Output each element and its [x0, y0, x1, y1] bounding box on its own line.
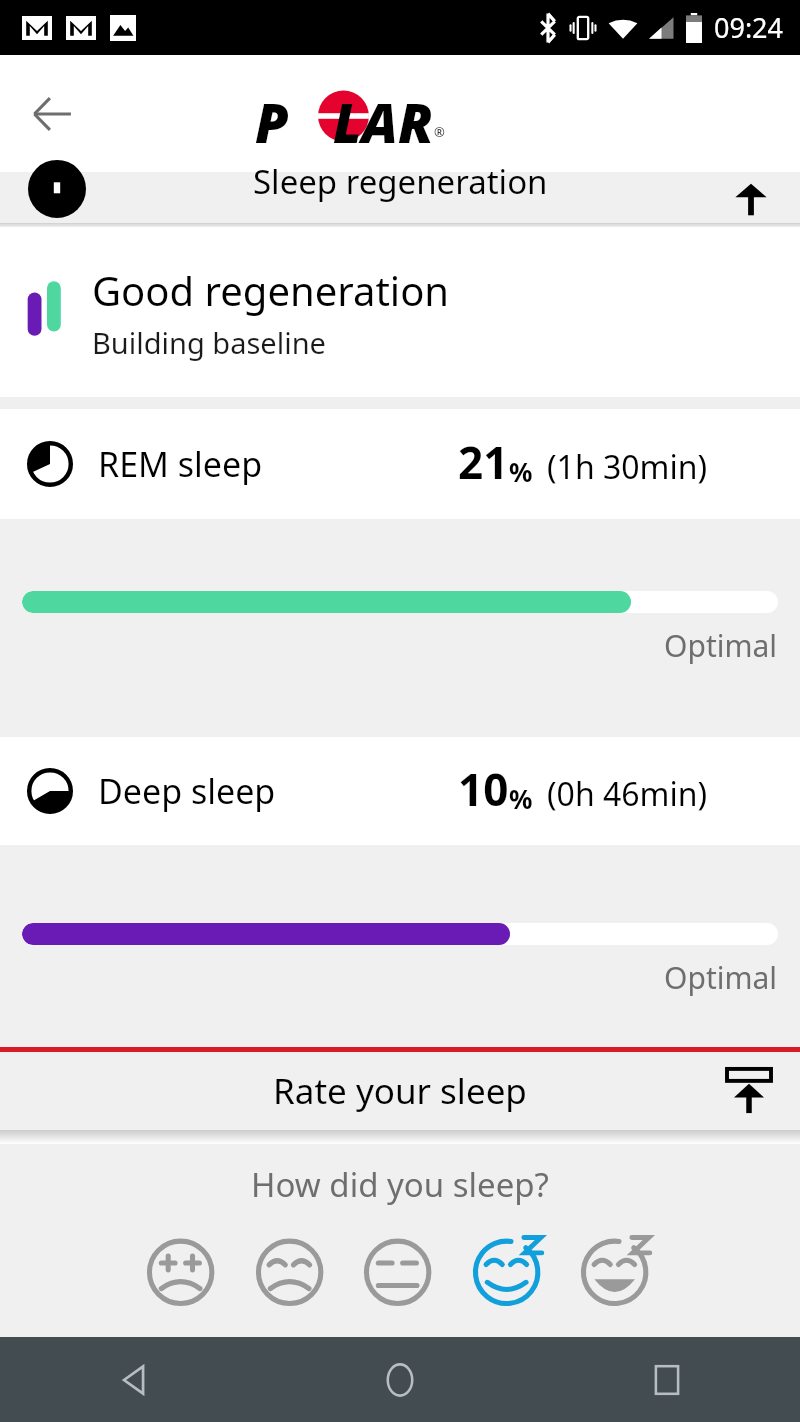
staticText: REM sleep: [98, 441, 263, 487]
button[interactable]: Sleep rating 4: [466, 1227, 552, 1313]
staticText: ®: [434, 123, 445, 141]
staticText: P: [255, 85, 289, 147]
button[interactable]: Sleep regeneration: [0, 172, 800, 227]
staticText: Deep sleep: [98, 768, 276, 814]
button[interactable]: Deep sleep: [0, 737, 800, 845]
staticText: LAR: [333, 85, 434, 147]
button[interactable]: Sleep rating 5: [574, 1227, 660, 1313]
staticText: 10: [458, 759, 509, 819]
staticText: %: [509, 781, 533, 816]
staticText: How did you sleep?: [0, 1162, 800, 1207]
other: Collapse: [734, 183, 768, 217]
staticText: %: [509, 454, 533, 489]
button[interactable]: Home: [266, 1337, 533, 1422]
staticText: Rate your sleep: [273, 1067, 527, 1115]
other: Expand: [724, 1068, 774, 1114]
button[interactable]: Rate your sleep: [0, 1052, 800, 1130]
button[interactable]: Sleep rating 3: [357, 1227, 443, 1313]
button[interactable]: Good regeneration: [0, 227, 800, 397]
staticText: Optimal: [664, 957, 778, 998]
button[interactable]: Back: [0, 1337, 266, 1422]
staticText: (1h 30min): [547, 445, 708, 489]
staticText: Optimal: [664, 625, 778, 666]
staticText: 09:24: [714, 9, 784, 46]
button[interactable]: Sleep rating 1: [140, 1227, 226, 1313]
button[interactable]: Sleep rating 2: [249, 1227, 335, 1313]
staticText: (0h 46min): [547, 772, 708, 816]
staticText: Good regeneration: [92, 263, 450, 317]
button[interactable]: REM sleep: [0, 409, 800, 519]
staticText: Building baseline: [92, 323, 326, 362]
staticText: 21: [458, 432, 509, 492]
staticText: Sleep regeneration: [253, 159, 548, 204]
button[interactable]: Back: [22, 84, 82, 144]
button[interactable]: Recents: [533, 1337, 800, 1422]
